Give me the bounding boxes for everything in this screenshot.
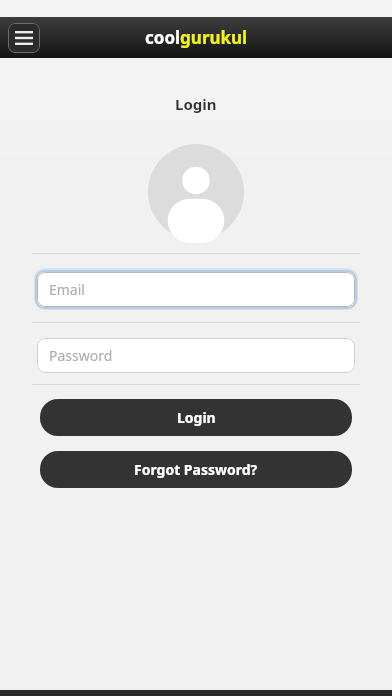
button[interactable]: Forgot Password? — [40, 451, 352, 488]
staticText: Password — [49, 346, 113, 365]
button[interactable]: Password — [37, 338, 355, 373]
staticText: Login — [175, 94, 217, 114]
staticText: Email — [49, 280, 85, 299]
staticText: coolgurukul — [145, 26, 248, 49]
button[interactable]: Email — [37, 272, 355, 307]
staticText: Login — [177, 408, 216, 427]
button[interactable]: Menu — [8, 23, 40, 53]
staticText: Forgot Password? — [134, 460, 258, 479]
button[interactable]: Login — [40, 399, 352, 436]
